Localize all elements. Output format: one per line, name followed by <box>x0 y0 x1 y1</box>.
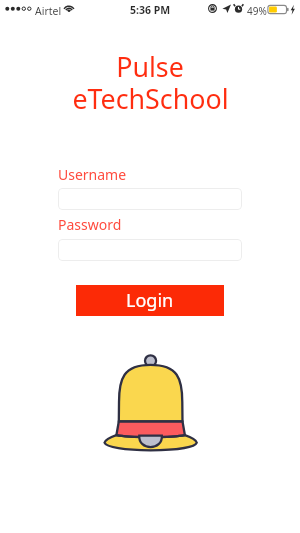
staticText: Pulse <box>116 48 184 85</box>
staticText: Airtel <box>35 4 62 18</box>
staticText: Password <box>58 215 122 234</box>
staticText: Login <box>126 288 174 313</box>
staticText: Username <box>58 165 127 184</box>
button[interactable] <box>58 239 242 261</box>
other: Notification bell <box>104 354 197 452</box>
staticText: 5:36 PM <box>130 3 171 17</box>
button[interactable]: Login <box>76 285 224 316</box>
staticText: 49% <box>247 4 267 18</box>
button[interactable] <box>58 188 242 210</box>
staticText: eTechSchool <box>72 80 229 117</box>
